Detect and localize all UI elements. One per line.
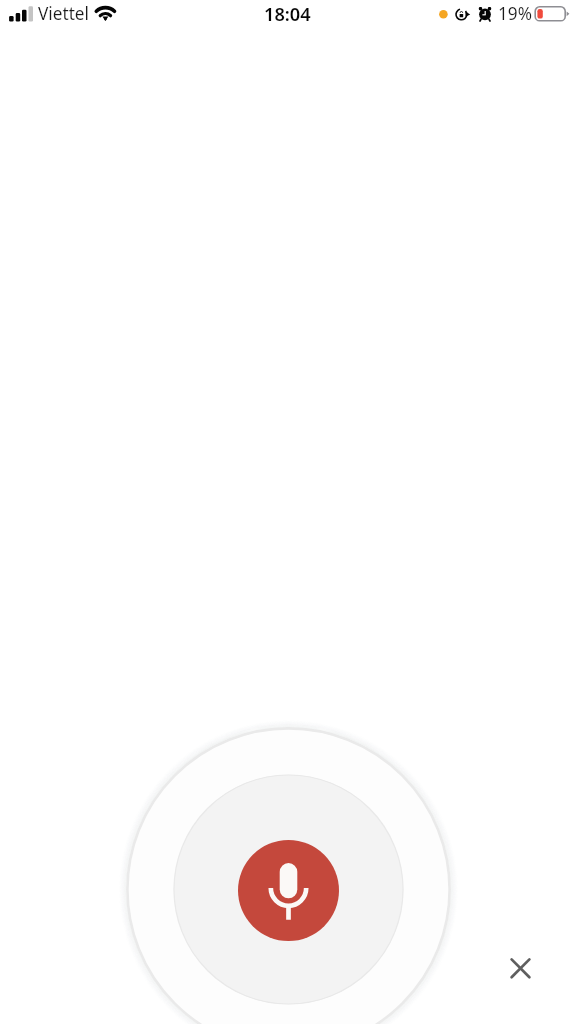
staticText: 18:04 <box>264 2 311 27</box>
staticText: Viettel <box>38 2 89 25</box>
button[interactable]: Record voice <box>238 840 339 941</box>
button[interactable]: Close <box>498 946 543 991</box>
staticText: 19% <box>498 2 532 25</box>
